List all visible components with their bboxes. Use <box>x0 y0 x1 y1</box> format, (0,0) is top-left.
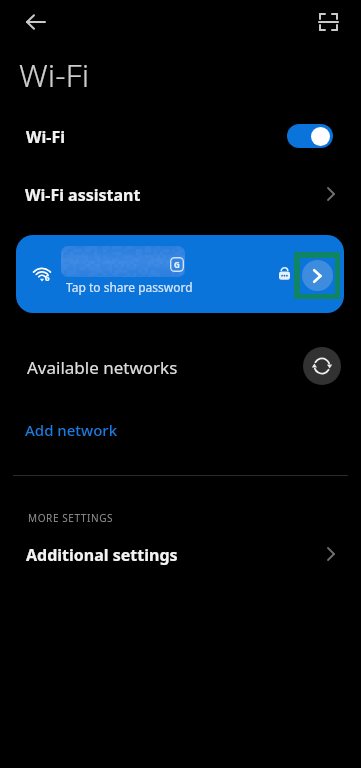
button[interactable]: Wi-Fi assistant <box>0 172 361 216</box>
staticText: G <box>174 259 180 270</box>
button[interactable] <box>303 347 341 385</box>
staticText: Additional settings <box>26 544 178 566</box>
staticText: MORE SETTINGS <box>28 511 114 525</box>
staticText: Tap to share password <box>66 279 193 295</box>
staticText: Wi-Fi assistant <box>25 184 141 206</box>
button[interactable]: Additional settings <box>0 536 361 572</box>
staticText: Wi-Fi <box>19 53 90 97</box>
button[interactable]: Wi-Fi <box>0 115 361 157</box>
button[interactable]: 6 <box>16 235 344 313</box>
staticText: Wi-Fi <box>26 126 65 148</box>
button[interactable]: Add network <box>0 412 361 446</box>
staticText: 6 <box>45 272 50 283</box>
staticText: Add network <box>25 420 118 440</box>
button[interactable] <box>302 260 333 291</box>
button[interactable] <box>310 6 346 38</box>
staticText: Available networks <box>27 356 178 379</box>
button[interactable] <box>18 6 54 38</box>
